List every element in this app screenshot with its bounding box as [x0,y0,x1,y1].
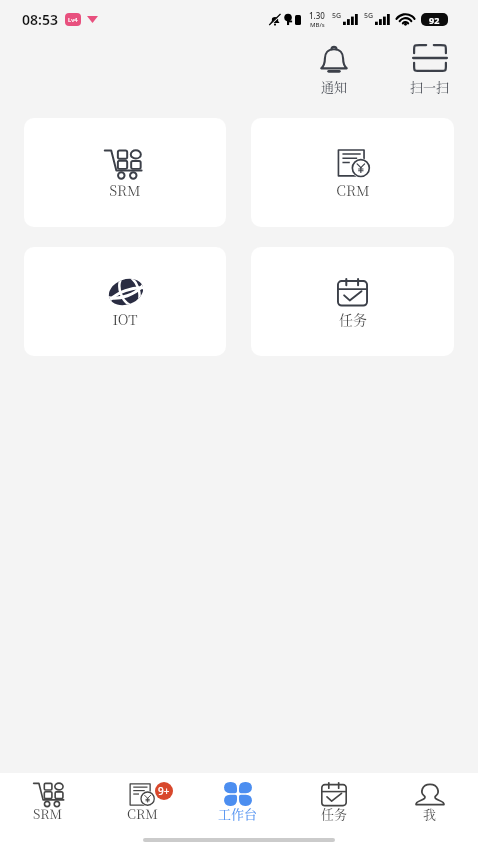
button[interactable]: CRM [251,118,454,227]
button[interactable]: SRM [24,118,226,227]
staticText: 扫一扫 [410,77,450,96]
staticText: CRM [336,180,370,200]
staticText: 5G [332,11,342,21]
button[interactable]: IOT [24,247,226,356]
staticText: CRM [127,804,158,823]
staticText: 通知 [321,77,348,96]
staticText: 我 [423,804,437,823]
button[interactable]: Notifications [312,38,356,102]
button[interactable]: 任务 [251,247,454,356]
staticText: MB/s [310,21,325,29]
staticText: SRM [109,180,141,200]
staticText: 9+ [158,784,170,798]
staticText: 工作台 [218,804,258,823]
staticText: 5G [364,11,374,21]
staticText: Lv4 [68,16,78,24]
staticText: IOT [112,309,138,329]
button[interactable]: 我 [382,773,478,825]
staticText: SRM [33,804,63,823]
staticText: 任务 [321,804,348,823]
staticText: 92 [429,14,440,26]
button[interactable]: 9+ [95,773,190,825]
staticText: 08:53 [22,10,58,29]
staticText: 1.30 [309,10,325,21]
button[interactable]: 工作台 [190,773,286,825]
button[interactable]: Scan [402,38,458,102]
button[interactable]: 任务 [286,773,382,825]
button[interactable]: SRM [0,773,95,825]
staticText: 任务 [339,309,367,329]
